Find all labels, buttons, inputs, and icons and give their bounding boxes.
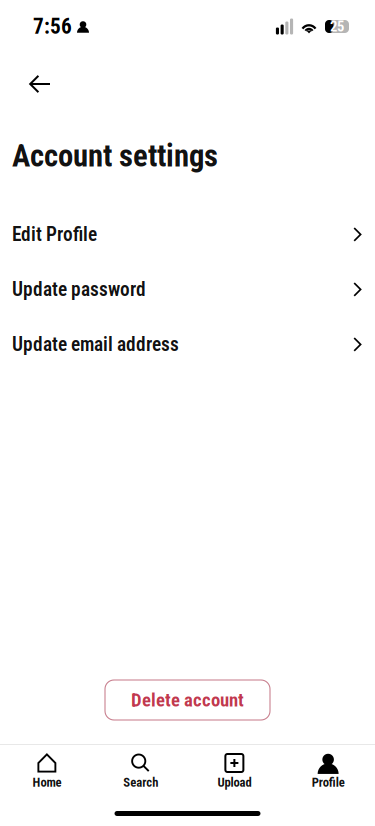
staticText: Update email address xyxy=(12,333,179,356)
staticText: 25 xyxy=(330,18,344,35)
staticText: Edit Profile xyxy=(12,223,97,246)
staticText: Search xyxy=(123,775,158,790)
button[interactable]: Edit Profile xyxy=(0,207,375,262)
staticText: Delete account xyxy=(131,689,244,711)
staticText: Account settings xyxy=(12,138,218,174)
button[interactable]: Upload xyxy=(187,745,281,795)
staticText: Profile xyxy=(312,775,345,790)
button[interactable]: Back xyxy=(19,65,61,103)
button[interactable]: Update password xyxy=(0,262,375,317)
staticText: Home xyxy=(32,775,61,790)
staticText: Update password xyxy=(12,278,146,301)
staticText: Upload xyxy=(217,775,251,790)
staticText: 7:56 xyxy=(33,14,72,39)
button[interactable]: Profile xyxy=(281,745,375,795)
button[interactable]: Home xyxy=(0,745,94,795)
button[interactable]: Update email address xyxy=(0,317,375,372)
button[interactable]: Delete account xyxy=(105,680,270,720)
button[interactable]: Search xyxy=(94,745,188,795)
